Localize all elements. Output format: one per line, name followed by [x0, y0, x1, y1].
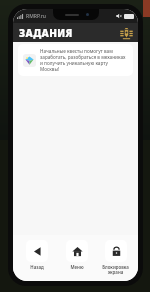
button[interactable]: Блокировка экрана — [97, 240, 134, 275]
staticText: Начальные квесты помогут вам заработать,… — [40, 48, 128, 72]
button[interactable]: Эмблема — [119, 26, 133, 40]
button[interactable]: Начальные квесты помогут вам заработать,… — [18, 44, 133, 76]
staticText: Меню — [70, 264, 84, 270]
staticText: Блокировка экрана — [102, 264, 129, 275]
staticText: RMRP.ru — [26, 13, 46, 20]
button[interactable]: Меню — [57, 240, 97, 270]
staticText: Назад — [30, 264, 44, 270]
button[interactable]: Назад — [17, 240, 57, 270]
staticText: ЗАДАНИЯ — [19, 26, 73, 40]
